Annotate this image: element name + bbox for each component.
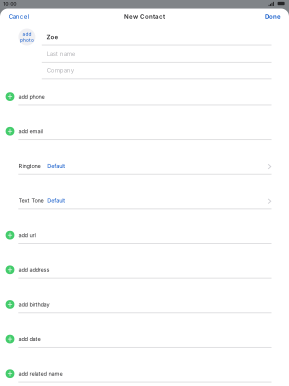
staticText: add	[22, 31, 31, 37]
button[interactable]: add related name	[0, 362, 289, 386]
button[interactable]: Cancel	[4, 11, 38, 23]
staticText: Default	[47, 162, 65, 169]
staticText: Last name	[47, 50, 76, 57]
staticText: add address	[19, 266, 50, 273]
button[interactable]: add address	[0, 258, 289, 293]
button[interactable]: Text Tone	[0, 189, 289, 223]
staticText: Text Tone	[18, 197, 43, 204]
button[interactable]: Add photo	[18, 28, 35, 45]
button[interactable]: add email	[0, 120, 289, 154]
button[interactable]: add url	[0, 224, 289, 258]
button[interactable]: Ringtone	[0, 154, 289, 189]
button[interactable]: add phone	[0, 85, 289, 120]
staticText: Cancel	[9, 13, 29, 20]
staticText: Company	[47, 66, 74, 74]
staticText: Zoe	[46, 33, 58, 41]
staticText: add date	[19, 336, 41, 342]
staticText: add birthday	[19, 301, 50, 308]
staticText: add related name	[19, 370, 63, 377]
staticText: 10:00	[3, 1, 16, 7]
staticText: New Contact	[124, 13, 165, 20]
staticText: add url	[19, 232, 36, 239]
staticText: Default	[47, 197, 65, 204]
button[interactable]: Done	[257, 11, 285, 23]
staticText: add email	[19, 128, 43, 135]
staticText: Ringtone	[18, 162, 40, 169]
button[interactable]: add date	[0, 327, 289, 362]
staticText: Done	[265, 13, 281, 20]
staticText: add phone	[19, 93, 45, 100]
staticText: photo	[20, 37, 34, 43]
button[interactable]: add birthday	[0, 293, 289, 327]
